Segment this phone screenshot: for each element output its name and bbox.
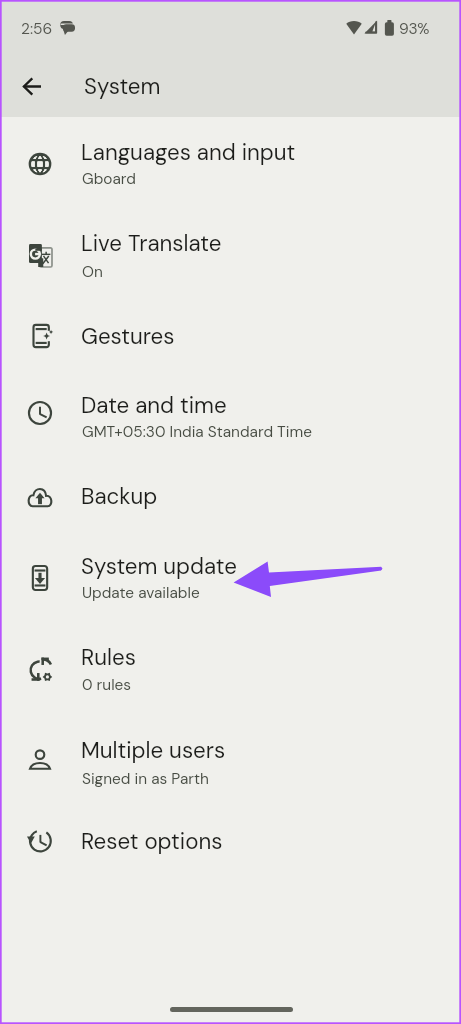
staticText: Multiple users bbox=[81, 736, 226, 765]
staticText: Date and time bbox=[81, 391, 227, 420]
button[interactable]: Live Translate bbox=[0, 211, 461, 301]
staticText: Reset options bbox=[81, 827, 223, 856]
button[interactable]: Languages and input bbox=[0, 119, 461, 209]
button[interactable]: Multiple users bbox=[0, 718, 461, 808]
button[interactable]: Reset options bbox=[0, 803, 461, 879]
staticText: 0 rules bbox=[82, 675, 132, 695]
staticText: Gestures bbox=[81, 322, 175, 351]
staticText: Update available bbox=[82, 583, 200, 603]
staticText: GMT+05:30 India Standard Time bbox=[82, 422, 312, 442]
staticText: Rules bbox=[81, 643, 136, 672]
button[interactable]: Date and time bbox=[0, 372, 461, 462]
staticText: Languages and input bbox=[81, 138, 296, 167]
staticText: Signed in as Parth bbox=[82, 769, 209, 789]
button[interactable]: System update bbox=[0, 533, 461, 623]
staticText: Gboard bbox=[82, 169, 136, 189]
staticText: System bbox=[84, 72, 161, 101]
staticText: On bbox=[82, 262, 103, 282]
staticText: Live Translate bbox=[81, 229, 222, 258]
staticText: System update bbox=[81, 552, 237, 581]
button[interactable]: Backup bbox=[0, 458, 461, 534]
button[interactable]: Back bbox=[8, 62, 56, 110]
staticText: 93% bbox=[399, 19, 430, 39]
staticText: 2:56 bbox=[21, 19, 53, 39]
button[interactable]: Gestures bbox=[0, 298, 461, 374]
button[interactable]: Rules bbox=[0, 625, 461, 715]
staticText: Backup bbox=[81, 482, 158, 511]
